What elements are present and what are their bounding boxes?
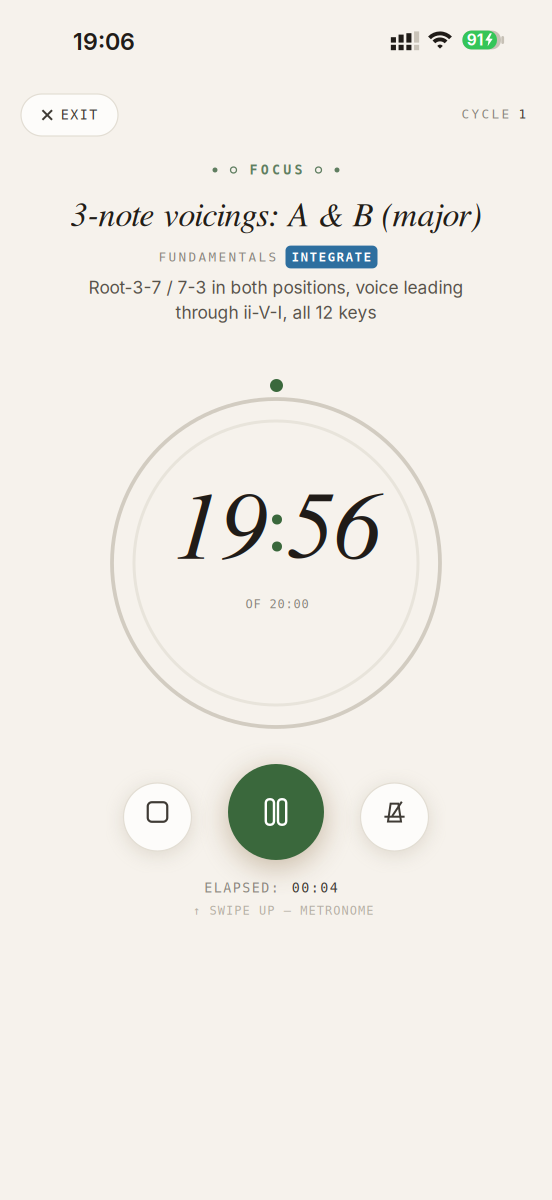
staticText: 19: [173, 483, 267, 577]
staticText: Root-3-7 / 7-3 in both positions, voice …: [88, 277, 463, 298]
staticText: FUNDAMENTALS: [158, 250, 276, 264]
staticText: CYCLE: [461, 107, 509, 121]
staticText: 91: [467, 31, 484, 49]
button[interactable]: Pause: [228, 764, 324, 860]
staticText: 1: [518, 107, 526, 121]
button[interactable]: Metronome: [360, 783, 428, 851]
staticText: EXIT: [61, 107, 97, 123]
staticText: 19:06: [73, 27, 135, 56]
staticText: 56: [287, 483, 381, 577]
button[interactable]: Stop: [123, 783, 191, 851]
staticText: through ii-V-I, all 12 keys: [175, 302, 376, 323]
button[interactable]: Exit: [21, 94, 118, 136]
staticText: 3-note voicings: A & B (major): [70, 199, 481, 233]
staticText: ↑ SWIPE UP — METRONOME: [193, 903, 373, 917]
staticText: ELAPSED:: [204, 880, 279, 896]
staticText: FOCUS: [249, 162, 302, 178]
staticText: INTEGRATE: [291, 250, 371, 264]
staticText: OF 20:00: [245, 597, 308, 611]
staticText: 00:04: [292, 880, 338, 896]
